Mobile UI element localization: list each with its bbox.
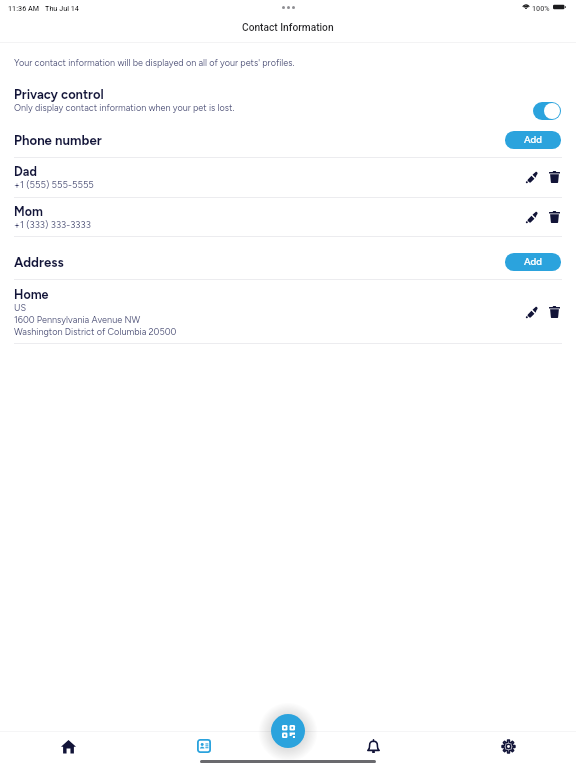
- button[interactable]: Delete: [544, 207, 564, 227]
- staticText: Dad: [14, 164, 37, 179]
- staticText: Washington District of Columbia 20500: [14, 326, 177, 337]
- button[interactable]: Add: [505, 131, 561, 149]
- staticText: Add: [524, 256, 542, 268]
- button[interactable]: Home: [52, 730, 84, 762]
- staticText: Thu Jul 14: [45, 4, 79, 12]
- staticText: 1600 Pennsylvania Avenue NW: [14, 314, 141, 325]
- button[interactable]: Edit: [522, 302, 542, 322]
- button[interactable]: Settings: [492, 730, 524, 762]
- staticText: Privacy control: [14, 87, 104, 102]
- staticText: +1 (333) 333-3333: [14, 219, 91, 230]
- button[interactable]: Edit: [522, 167, 542, 187]
- button[interactable]: Contacts: [188, 730, 220, 762]
- staticText: Address: [14, 254, 64, 270]
- staticText: 100%: [532, 4, 550, 12]
- staticText: 11:36 AM: [8, 4, 40, 12]
- button[interactable]: Privacy control: [533, 102, 561, 120]
- button[interactable]: Notifications: [357, 730, 389, 762]
- staticText: +1 (555) 555-5555: [14, 179, 94, 190]
- staticText: Your contact information will be display…: [14, 57, 295, 68]
- staticText: US: [14, 302, 27, 313]
- staticText: Home: [14, 287, 49, 302]
- button[interactable]: Edit: [522, 207, 542, 227]
- staticText: Contact Information: [242, 22, 334, 34]
- staticText: Phone number: [14, 132, 102, 148]
- button[interactable]: Delete: [544, 167, 564, 187]
- staticText: Only display contact information when yo…: [14, 102, 235, 113]
- button[interactable]: Add: [505, 253, 561, 271]
- staticText: Add: [524, 134, 542, 146]
- button[interactable]: Delete: [544, 302, 564, 322]
- staticText: Mom: [14, 204, 43, 219]
- button[interactable]: Scan QR code: [271, 714, 305, 748]
